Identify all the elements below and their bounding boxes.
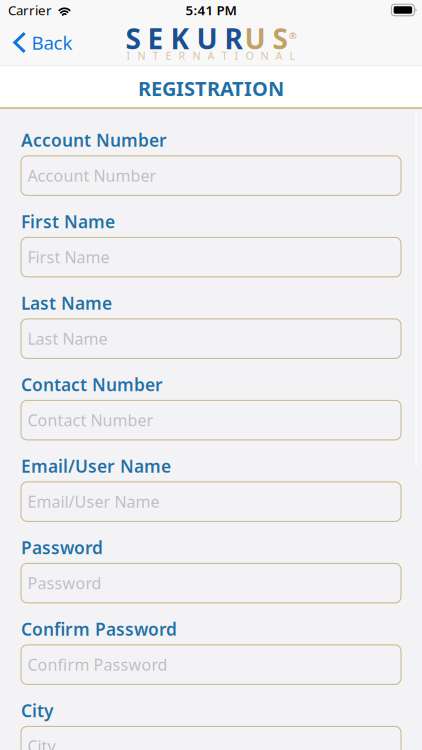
staticText: Password [21,536,103,559]
staticText: S E K U R [125,20,242,57]
staticText: City [27,735,55,750]
staticText: Password [27,572,101,594]
button[interactable]: Account Number [21,156,401,195]
button[interactable]: Back [0,20,100,65]
staticText: 5:41 PM [185,1,236,19]
button[interactable]: Last Name [21,319,401,358]
staticText: Carrier [8,1,52,19]
staticText: Confirm Password [27,654,167,675]
button[interactable]: Contact Number [21,400,401,440]
staticText: Last Name [21,291,112,314]
staticText: U S [244,20,287,57]
button[interactable]: Confirm Password [21,645,401,684]
staticText: First Name [21,210,115,233]
staticText: Account Number [27,165,156,186]
button[interactable]: City [21,726,401,750]
staticText: REGISTRATION [138,75,284,102]
button[interactable]: First Name [21,237,401,277]
button[interactable]: Email/User Name [21,482,401,521]
staticText: City [21,699,53,722]
staticText: Back [31,30,72,55]
staticText: Email/User Name [27,491,159,512]
staticText: I N T E R N A T I O N A L [126,48,295,63]
staticText: Confirm Password [21,617,177,640]
staticText: Account Number [21,128,167,151]
staticText: Last Name [27,328,107,349]
staticText: ® [289,29,297,42]
staticText: First Name [27,246,109,268]
staticText: Contact Number [27,409,153,431]
staticText: Contact Number [21,373,163,396]
staticText: Email/User Name [21,454,171,477]
button[interactable]: Password [21,563,401,603]
